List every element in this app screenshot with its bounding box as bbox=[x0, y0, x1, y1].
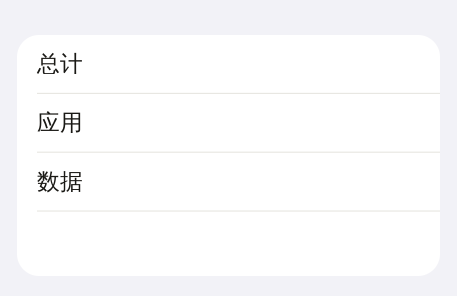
staticText: 总计 bbox=[37, 50, 83, 78]
staticText: 应用 bbox=[37, 109, 83, 137]
staticText: 数据 bbox=[37, 168, 83, 195]
